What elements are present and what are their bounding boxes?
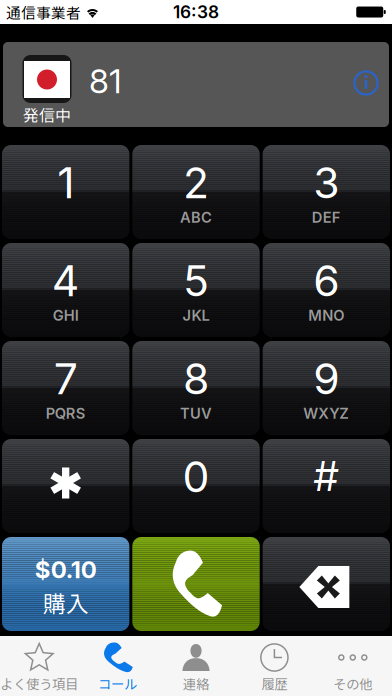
button[interactable]: 3: [263, 145, 390, 239]
staticText: よく使う項目: [0, 674, 78, 693]
staticText: $0.10: [35, 555, 97, 584]
button[interactable]: 4: [2, 243, 129, 337]
staticText: DEF: [312, 209, 341, 226]
staticText: 購入: [43, 586, 89, 619]
button[interactable]: 2: [132, 145, 260, 239]
staticText: GHI: [53, 307, 79, 324]
staticText: 2: [183, 157, 209, 209]
staticText: 9: [313, 353, 339, 405]
staticText: MNO: [308, 307, 344, 324]
staticText: ABC: [180, 209, 212, 226]
staticText: 81: [89, 61, 122, 101]
button[interactable]: 8: [132, 341, 260, 435]
button[interactable]: $0.10: [2, 537, 129, 631]
button[interactable]: コール: [78, 636, 157, 696]
button[interactable]: Info: [353, 70, 379, 96]
button[interactable]: よく使う項目: [0, 636, 78, 696]
staticText: TUV: [180, 405, 212, 422]
staticText: 5: [183, 255, 209, 307]
button[interactable]: 0: [132, 439, 260, 533]
button[interactable]: 履歴: [235, 636, 314, 696]
staticText: 6: [313, 255, 339, 307]
staticText: 発信中: [23, 103, 71, 126]
staticText: 1: [57, 157, 74, 209]
button[interactable]: 5: [132, 243, 260, 337]
button[interactable]: 連絡: [157, 636, 235, 696]
staticText: その他: [333, 674, 372, 693]
staticText: WXYZ: [303, 405, 349, 422]
staticText: 連絡: [183, 674, 209, 693]
button[interactable]: 7: [2, 341, 129, 435]
staticText: JKL: [182, 307, 209, 324]
button[interactable]: Star: [2, 439, 129, 533]
button[interactable]: Delete: [263, 537, 390, 631]
staticText: 16:38: [173, 1, 219, 22]
staticText: 3: [313, 157, 339, 209]
staticText: 8: [183, 353, 209, 405]
staticText: コール: [98, 674, 137, 693]
button[interactable]: #: [263, 439, 390, 533]
staticText: 通信事業者: [6, 1, 81, 23]
button[interactable]: その他: [314, 636, 392, 696]
button[interactable]: 9: [263, 341, 390, 435]
staticText: 履歴: [261, 674, 287, 693]
button[interactable]: 1: [2, 145, 129, 239]
staticText: PQRS: [46, 405, 86, 422]
button[interactable]: Call: [132, 537, 260, 631]
staticText: #: [314, 451, 339, 501]
button[interactable]: 6: [263, 243, 390, 337]
staticText: 7: [54, 353, 78, 405]
staticText: 0: [182, 451, 209, 503]
staticText: 4: [52, 255, 80, 307]
